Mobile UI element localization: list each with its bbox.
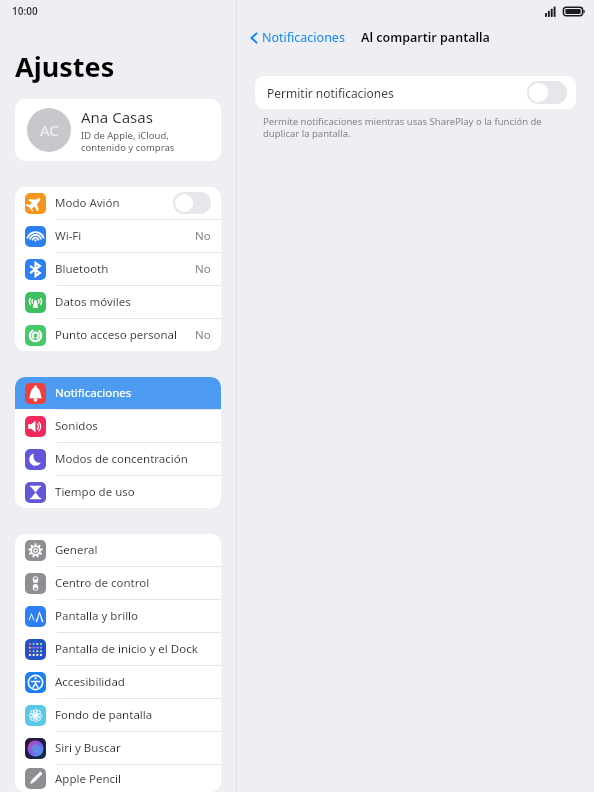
staticText: Bluetooth xyxy=(55,261,195,277)
staticText: Notificaciones xyxy=(262,29,345,46)
button[interactable]: Centro de control xyxy=(15,567,221,599)
staticText: No xyxy=(195,261,211,277)
staticText: 10:00 xyxy=(12,4,38,18)
staticText: Modos de concentración xyxy=(55,451,211,467)
button[interactable]: Permitir notificaciones xyxy=(255,76,576,109)
button[interactable]: Siri y Buscar xyxy=(15,732,221,764)
staticText: Punto acceso personal xyxy=(55,327,195,343)
button[interactable]: Apple Pencil xyxy=(15,765,221,792)
staticText: ID de Apple, iCloud, contenido y compras xyxy=(81,129,175,154)
staticText: Notificaciones xyxy=(55,385,211,401)
staticText: Fondo de pantalla xyxy=(55,707,211,723)
staticText: No xyxy=(195,327,211,343)
staticText: Siri y Buscar xyxy=(55,740,211,756)
staticText: Wi-Fi xyxy=(55,228,195,244)
button[interactable]: Datos móviles xyxy=(15,286,221,318)
button[interactable]: Modos de concentración xyxy=(15,443,221,475)
staticText: Datos móviles xyxy=(55,294,211,310)
staticText: Modo Avión xyxy=(55,195,173,211)
staticText: No xyxy=(195,228,211,244)
staticText: Permitir notificaciones xyxy=(267,85,527,101)
button[interactable]: Fondo de pantalla xyxy=(15,699,221,731)
button[interactable]: Bluetooth xyxy=(15,253,221,285)
button[interactable]: Notificaciones xyxy=(15,377,221,409)
staticText: Pantalla de inicio y el Dock xyxy=(55,641,211,657)
button[interactable]: Activar xyxy=(527,81,567,104)
staticText: Ana Casas xyxy=(81,107,153,127)
button[interactable]: Wi-Fi xyxy=(15,220,221,252)
staticText: Accesibilidad xyxy=(55,674,211,690)
button[interactable]: Punto acceso personal xyxy=(15,319,221,351)
button[interactable]: Modo Avión xyxy=(15,187,221,219)
staticText: Sonidos xyxy=(55,418,211,434)
button[interactable]: Pantalla y brillo xyxy=(15,600,221,632)
button[interactable]: Sonidos xyxy=(15,410,221,442)
staticText: Centro de control xyxy=(55,575,211,591)
staticText: Ajustes xyxy=(15,48,115,85)
staticText: Tiempo de uso xyxy=(55,484,211,500)
button[interactable]: General xyxy=(15,534,221,566)
button[interactable]: Tiempo de uso xyxy=(15,476,221,508)
staticText: Apple Pencil xyxy=(55,771,211,787)
staticText: Pantalla y brillo xyxy=(55,608,211,624)
staticText: Permite notificaciones mientras usas Sha… xyxy=(263,115,542,140)
staticText: AC xyxy=(40,120,59,140)
button[interactable]: Activar xyxy=(173,192,211,214)
button[interactable]: Pantalla de inicio y el Dock xyxy=(15,633,221,665)
staticText: Al compartir pantalla xyxy=(361,29,490,46)
button[interactable]: AC xyxy=(15,99,221,161)
staticText: General xyxy=(55,542,211,558)
button[interactable]: Notificaciones xyxy=(247,25,347,50)
button[interactable]: Accesibilidad xyxy=(15,666,221,698)
